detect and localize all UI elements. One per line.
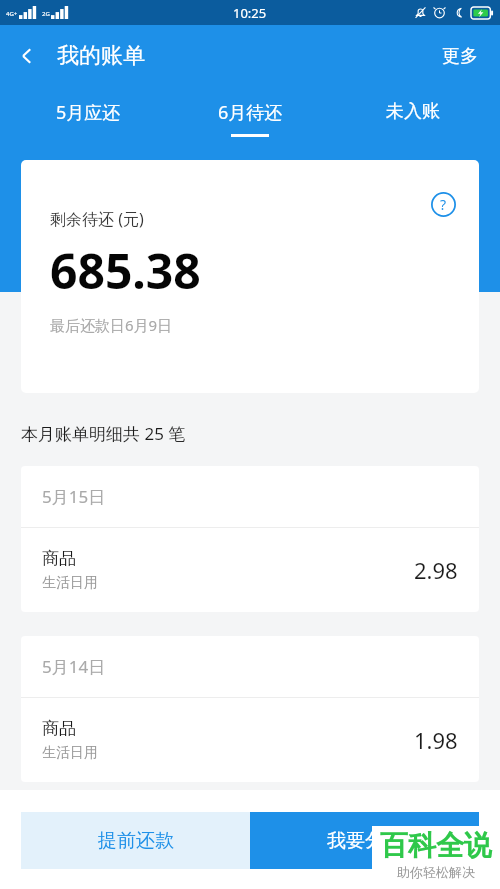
staticText: 6月待还 [218, 100, 283, 125]
staticText: 2G [42, 10, 50, 18]
staticText: 4G+ [6, 10, 18, 18]
button[interactable]: 剩余待还 (元) [21, 160, 479, 393]
button[interactable]: 提前还款 [21, 812, 250, 869]
button[interactable]: 5月14日 [21, 636, 479, 782]
staticText: ? [440, 195, 447, 214]
staticText: 更多 [442, 45, 478, 68]
staticText: 生活日用 [42, 744, 98, 762]
staticText: 提前还款 [98, 829, 174, 853]
staticText: 5月14日 [42, 655, 106, 678]
button[interactable]: 6月待还 [175, 87, 325, 137]
button[interactable]: 返回 [0, 39, 44, 73]
staticText: 商品 [42, 718, 76, 739]
button[interactable]: 我要分期 [250, 812, 479, 869]
staticText: 2.98 [414, 555, 458, 585]
staticText: 5月15日 [42, 485, 106, 508]
staticText: 剩余待还 (元) [50, 208, 144, 230]
staticText: 未入账 [386, 100, 440, 123]
staticText: 我要分期 [327, 829, 403, 853]
button[interactable]: 5月应还 [13, 87, 163, 134]
staticText: 最后还款日6月9日 [50, 315, 173, 335]
button[interactable]: 未入账 [338, 87, 488, 132]
staticText: 10:25 [233, 4, 267, 22]
staticText: 百科全说 [380, 828, 492, 863]
staticText: 685.38 [50, 238, 201, 303]
button[interactable]: 5月15日 [21, 466, 479, 612]
staticText: 生活日用 [42, 574, 98, 592]
button[interactable]: 更多 [420, 35, 500, 78]
button[interactable]: 帮助 [430, 191, 457, 218]
staticText: 助你轻松解决 [397, 864, 475, 880]
staticText: 5月应还 [56, 100, 121, 125]
staticText: 商品 [42, 548, 76, 569]
staticText: 本月账单明细共 25 笔 [21, 422, 186, 445]
staticText: 1.98 [414, 725, 458, 755]
staticText: 我的账单 [57, 42, 145, 70]
